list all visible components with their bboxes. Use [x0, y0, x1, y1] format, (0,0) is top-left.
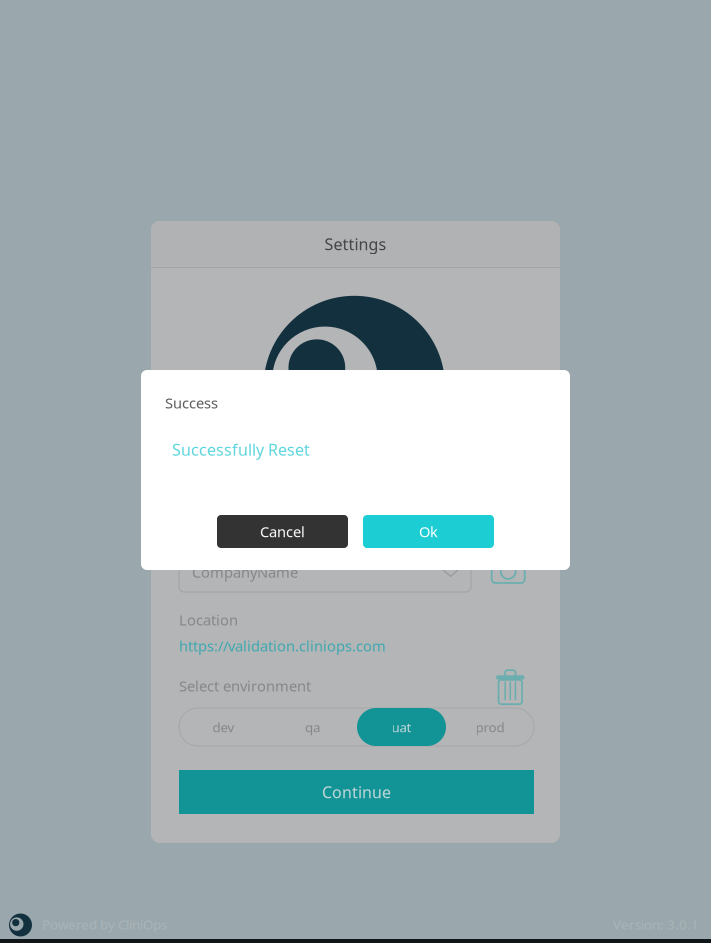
button[interactable]: prod [446, 708, 534, 746]
staticText: Continue [322, 781, 391, 803]
staticText: uat [391, 718, 411, 736]
staticText: prod [475, 718, 504, 736]
staticText: CompanyName [192, 562, 298, 582]
button[interactable]: Continue [179, 770, 534, 814]
staticText: Success [165, 393, 218, 412]
staticText: Version: 3.0.1 [613, 915, 699, 933]
staticText: dev [212, 718, 234, 736]
button[interactable]: https://validation.cliniops.com [179, 636, 386, 655]
staticText: Powered by CliniOps [42, 915, 167, 933]
staticText: Settings [324, 233, 386, 255]
staticText: qa [305, 718, 320, 736]
button[interactable]: CompanyName [179, 552, 471, 592]
button[interactable]: Scan QR code [487, 548, 530, 585]
staticText: Cancel [260, 522, 305, 541]
button[interactable]: dev [179, 708, 268, 746]
staticText: Ok [419, 522, 438, 541]
staticText: Select environment [179, 676, 311, 695]
button[interactable]: qa [268, 708, 357, 746]
staticText: Location [179, 610, 238, 629]
staticText: Successfully Reset [172, 439, 310, 460]
button[interactable]: Delete [494, 663, 526, 701]
button[interactable]: Cancel [217, 515, 348, 548]
staticText: https://validation.cliniops.com [179, 636, 386, 655]
button[interactable]: uat [357, 708, 446, 746]
button[interactable]: Ok [363, 515, 494, 548]
